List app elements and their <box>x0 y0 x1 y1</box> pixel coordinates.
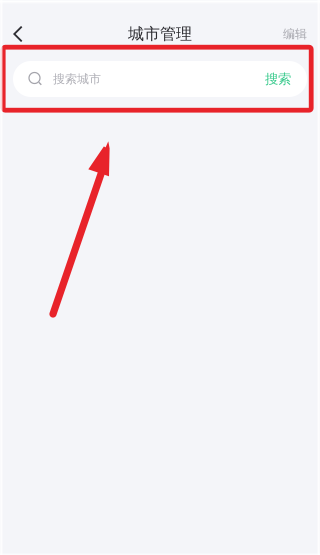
staticText: 搜索 <box>265 71 291 87</box>
button[interactable]: 编辑 <box>283 12 320 56</box>
button[interactable]: 返回 <box>0 12 36 56</box>
button[interactable]: 搜索 <box>265 61 307 97</box>
staticText: 编辑 <box>283 27 307 41</box>
button[interactable]: 搜索城市 <box>13 61 265 97</box>
staticText: 城市管理 <box>128 24 192 44</box>
staticText: 搜索城市 <box>53 72 101 86</box>
